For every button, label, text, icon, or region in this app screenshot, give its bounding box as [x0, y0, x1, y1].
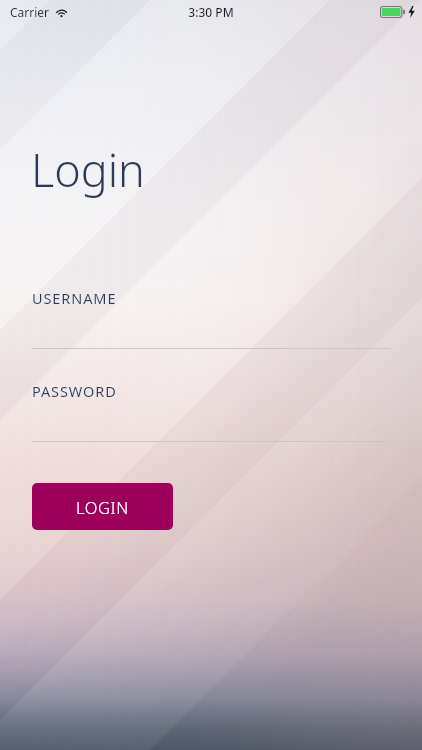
button[interactable]: LOGIN	[32, 483, 173, 530]
staticText: LOGIN	[76, 496, 129, 518]
button[interactable]: Username input field	[32, 300, 390, 358]
staticText: Login	[31, 139, 145, 200]
button[interactable]: Password input field	[32, 390, 390, 448]
staticText: Carrier	[10, 4, 50, 20]
staticText: USERNAME	[32, 288, 117, 308]
staticText: 3:30 PM	[188, 4, 234, 20]
staticText: PASSWORD	[32, 381, 117, 401]
